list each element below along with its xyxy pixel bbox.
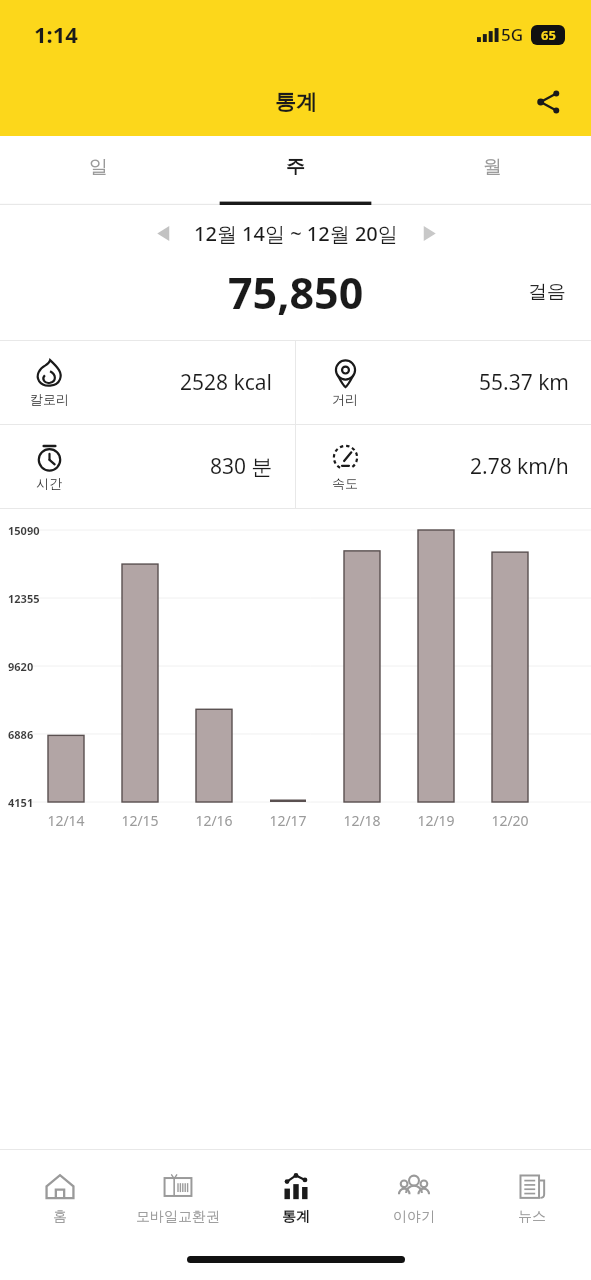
staticText: 12/15 <box>114 811 166 830</box>
button[interactable]: 월 <box>394 136 591 205</box>
staticText: 뉴스 <box>518 1208 546 1226</box>
staticText: 통계 <box>275 89 317 115</box>
staticText: 거리 <box>332 391 358 407</box>
staticText: 홈 <box>53 1208 67 1226</box>
staticText: 4151 <box>8 795 34 810</box>
staticText: 830 분 <box>210 452 273 481</box>
staticText: 월 <box>483 155 502 179</box>
button[interactable]: 시간 <box>0 425 295 508</box>
staticText: 이야기 <box>393 1208 435 1226</box>
button[interactable]: 이야기 <box>355 1150 473 1246</box>
staticText: 75,850 <box>228 263 364 322</box>
staticText: 일 <box>89 155 108 179</box>
staticText: 속도 <box>332 475 358 491</box>
staticText: 통계 <box>282 1208 310 1226</box>
staticText: 6886 <box>8 727 34 742</box>
staticText: 55.37 km <box>479 368 569 397</box>
button[interactable]: 거리 <box>296 341 591 424</box>
button[interactable]: Next week <box>408 211 452 255</box>
button[interactable]: 홈 <box>0 1150 119 1246</box>
button[interactable]: 일 <box>0 136 197 205</box>
staticText: 2528 kcal <box>180 368 273 397</box>
staticText: 12/14 <box>40 811 92 830</box>
staticText: 걸음 <box>528 280 566 304</box>
staticText: 1:14 <box>34 19 78 49</box>
button[interactable]: 속도 <box>296 425 591 508</box>
staticText: 12/16 <box>188 811 240 830</box>
staticText: 12355 <box>8 591 40 606</box>
staticText: 12/17 <box>262 811 314 830</box>
button[interactable]: 모바일교환권 <box>119 1150 237 1246</box>
staticText: 12/20 <box>484 811 536 830</box>
staticText: 12/18 <box>336 811 388 830</box>
button[interactable]: 뉴스 <box>473 1150 591 1246</box>
button[interactable]: Share <box>525 78 573 126</box>
staticText: 65 <box>541 26 556 44</box>
staticText: 15090 <box>8 523 40 538</box>
button[interactable]: 주 <box>197 136 394 205</box>
staticText: 주 <box>286 155 305 179</box>
button[interactable]: 칼로리 <box>0 341 295 424</box>
staticText: 12월 14일 ~ 12월 20일 <box>194 220 398 247</box>
button[interactable]: 통계 <box>237 1150 355 1246</box>
staticText: 칼로리 <box>30 391 69 407</box>
button[interactable]: Previous week <box>140 211 184 255</box>
staticText: 시간 <box>36 475 62 491</box>
staticText: 2.78 km/h <box>470 452 569 481</box>
staticText: 12/19 <box>410 811 462 830</box>
staticText: 모바일교환권 <box>136 1208 220 1226</box>
staticText: 5G <box>501 23 524 46</box>
staticText: 9620 <box>8 659 34 674</box>
